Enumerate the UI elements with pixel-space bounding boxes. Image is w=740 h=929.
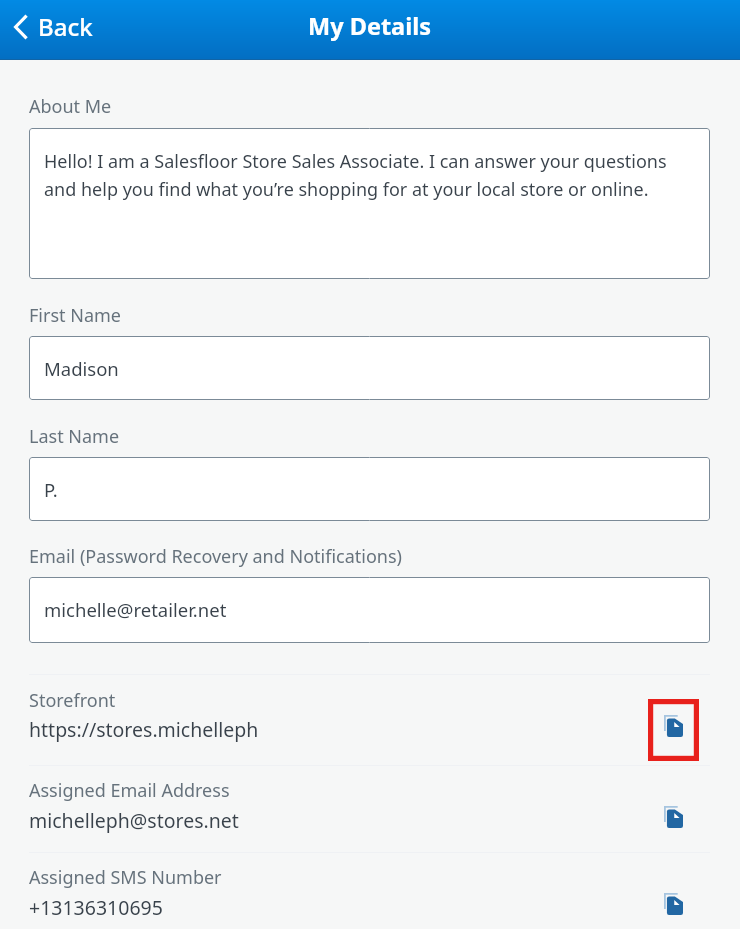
button[interactable]: Madison [29, 336, 710, 400]
staticText: Madison [44, 356, 119, 381]
staticText: Last Name [29, 424, 120, 449]
button[interactable]: michelle@retailer.net [29, 577, 710, 643]
staticText: Storefront [29, 688, 116, 713]
button[interactable]: Copy Storefront [648, 699, 699, 761]
button[interactable]: Back [0, 2, 103, 51]
button[interactable]: Hello! I am a Salesfloor Store Sales Ass… [29, 128, 710, 279]
staticText: michelle@retailer.net [44, 597, 227, 622]
staticText: +13136310695 [29, 894, 163, 921]
staticText: P. [44, 477, 58, 502]
staticText: My Details [308, 10, 432, 42]
staticText: Hello! I am a Salesfloor Store Sales Ass… [44, 149, 691, 202]
staticText: Assigned SMS Number [29, 865, 222, 890]
staticText: https://stores.michelleph [29, 716, 259, 743]
staticText: Email (Password Recovery and Notificatio… [29, 544, 402, 569]
button[interactable]: Copy Assigned SMS Number [648, 877, 699, 929]
staticText: Assigned Email Address [29, 778, 230, 803]
staticText: First Name [29, 303, 121, 328]
staticText: michelleph@stores.net [29, 807, 239, 834]
staticText: Back [38, 10, 93, 43]
button[interactable]: P. [29, 457, 710, 521]
staticText: About Me [29, 94, 112, 119]
button[interactable]: Copy Assigned Email Address [648, 790, 699, 852]
